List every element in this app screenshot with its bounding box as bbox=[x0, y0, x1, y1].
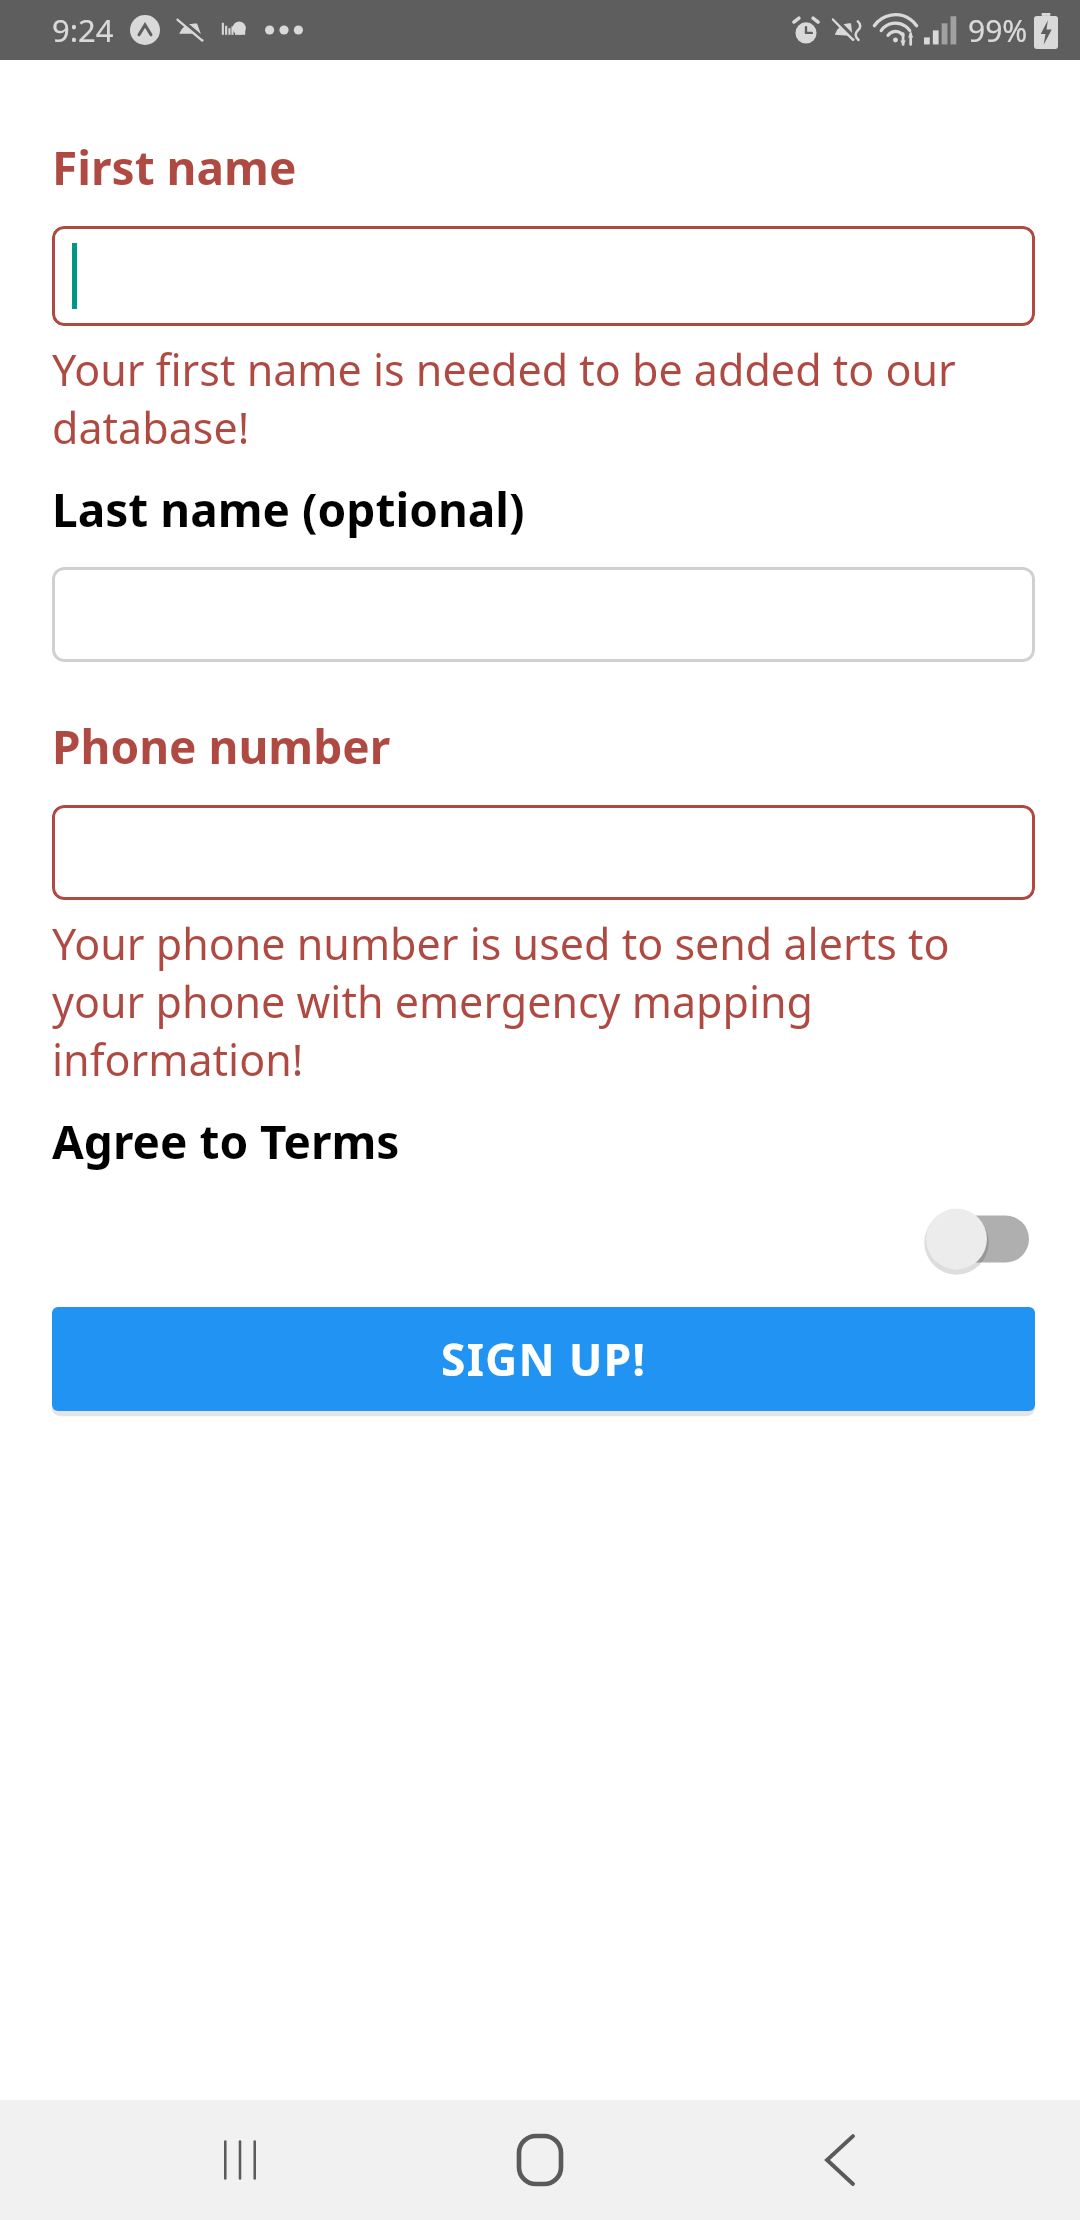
staticText: Phone number bbox=[52, 715, 391, 778]
button[interactable] bbox=[52, 567, 1035, 662]
staticText: Your first name is needed to be added to… bbox=[52, 340, 1035, 456]
button[interactable]: Agree to Terms toggle, off bbox=[924, 1201, 1029, 1277]
button[interactable]: Back bbox=[780, 2100, 900, 2220]
staticText: 99% bbox=[968, 10, 1028, 51]
staticText: SIGN UP! bbox=[441, 1329, 647, 1389]
staticText: First name bbox=[52, 136, 297, 199]
button[interactable] bbox=[52, 805, 1035, 900]
button[interactable]: Home bbox=[480, 2100, 600, 2220]
staticText: 9:24 bbox=[52, 9, 114, 51]
staticText: Last name (optional) bbox=[52, 478, 525, 541]
button[interactable]: Recent apps bbox=[180, 2100, 300, 2220]
button[interactable]: SIGN UP! bbox=[52, 1307, 1035, 1411]
staticText: Your phone number is used to send alerts… bbox=[52, 914, 1035, 1088]
button[interactable] bbox=[52, 226, 1035, 326]
staticText: Agree to Terms bbox=[52, 1110, 400, 1173]
